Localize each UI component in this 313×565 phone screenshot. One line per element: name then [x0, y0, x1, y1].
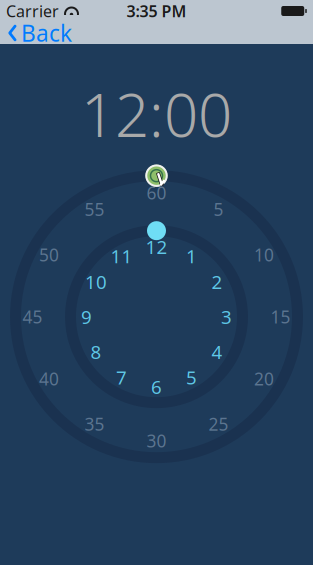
staticText: 9: [81, 304, 92, 329]
staticText: 12: [145, 234, 167, 259]
staticText: Back: [21, 18, 72, 48]
staticText: 15: [270, 305, 290, 328]
staticText: 10: [254, 243, 274, 266]
staticText: 60: [146, 181, 166, 204]
staticText: 12:00: [81, 74, 232, 154]
staticText: 40: [39, 367, 59, 390]
staticText: 7: [116, 365, 127, 390]
button[interactable]: Hour selector: [147, 221, 166, 240]
staticText: 20: [254, 367, 274, 390]
staticText: 35: [84, 413, 104, 436]
staticText: 6: [151, 374, 162, 399]
staticText: 3: [221, 304, 232, 329]
staticText: 1: [186, 244, 197, 268]
button[interactable]: Back: [0, 22, 78, 44]
staticText: Carrier: [6, 0, 59, 22]
staticText: 11: [110, 244, 132, 268]
staticText: 55: [84, 198, 104, 221]
staticText: 4: [212, 339, 223, 364]
staticText: 5: [213, 198, 223, 221]
staticText: 5: [186, 365, 197, 390]
staticText: 2: [212, 269, 223, 294]
staticText: 8: [90, 339, 101, 364]
staticText: 30: [146, 429, 166, 452]
staticText: 45: [22, 305, 42, 328]
staticText: 10: [85, 269, 107, 294]
staticText: 25: [208, 413, 228, 436]
staticText: 3:35 PM: [126, 0, 186, 22]
staticText: 50: [39, 243, 59, 266]
